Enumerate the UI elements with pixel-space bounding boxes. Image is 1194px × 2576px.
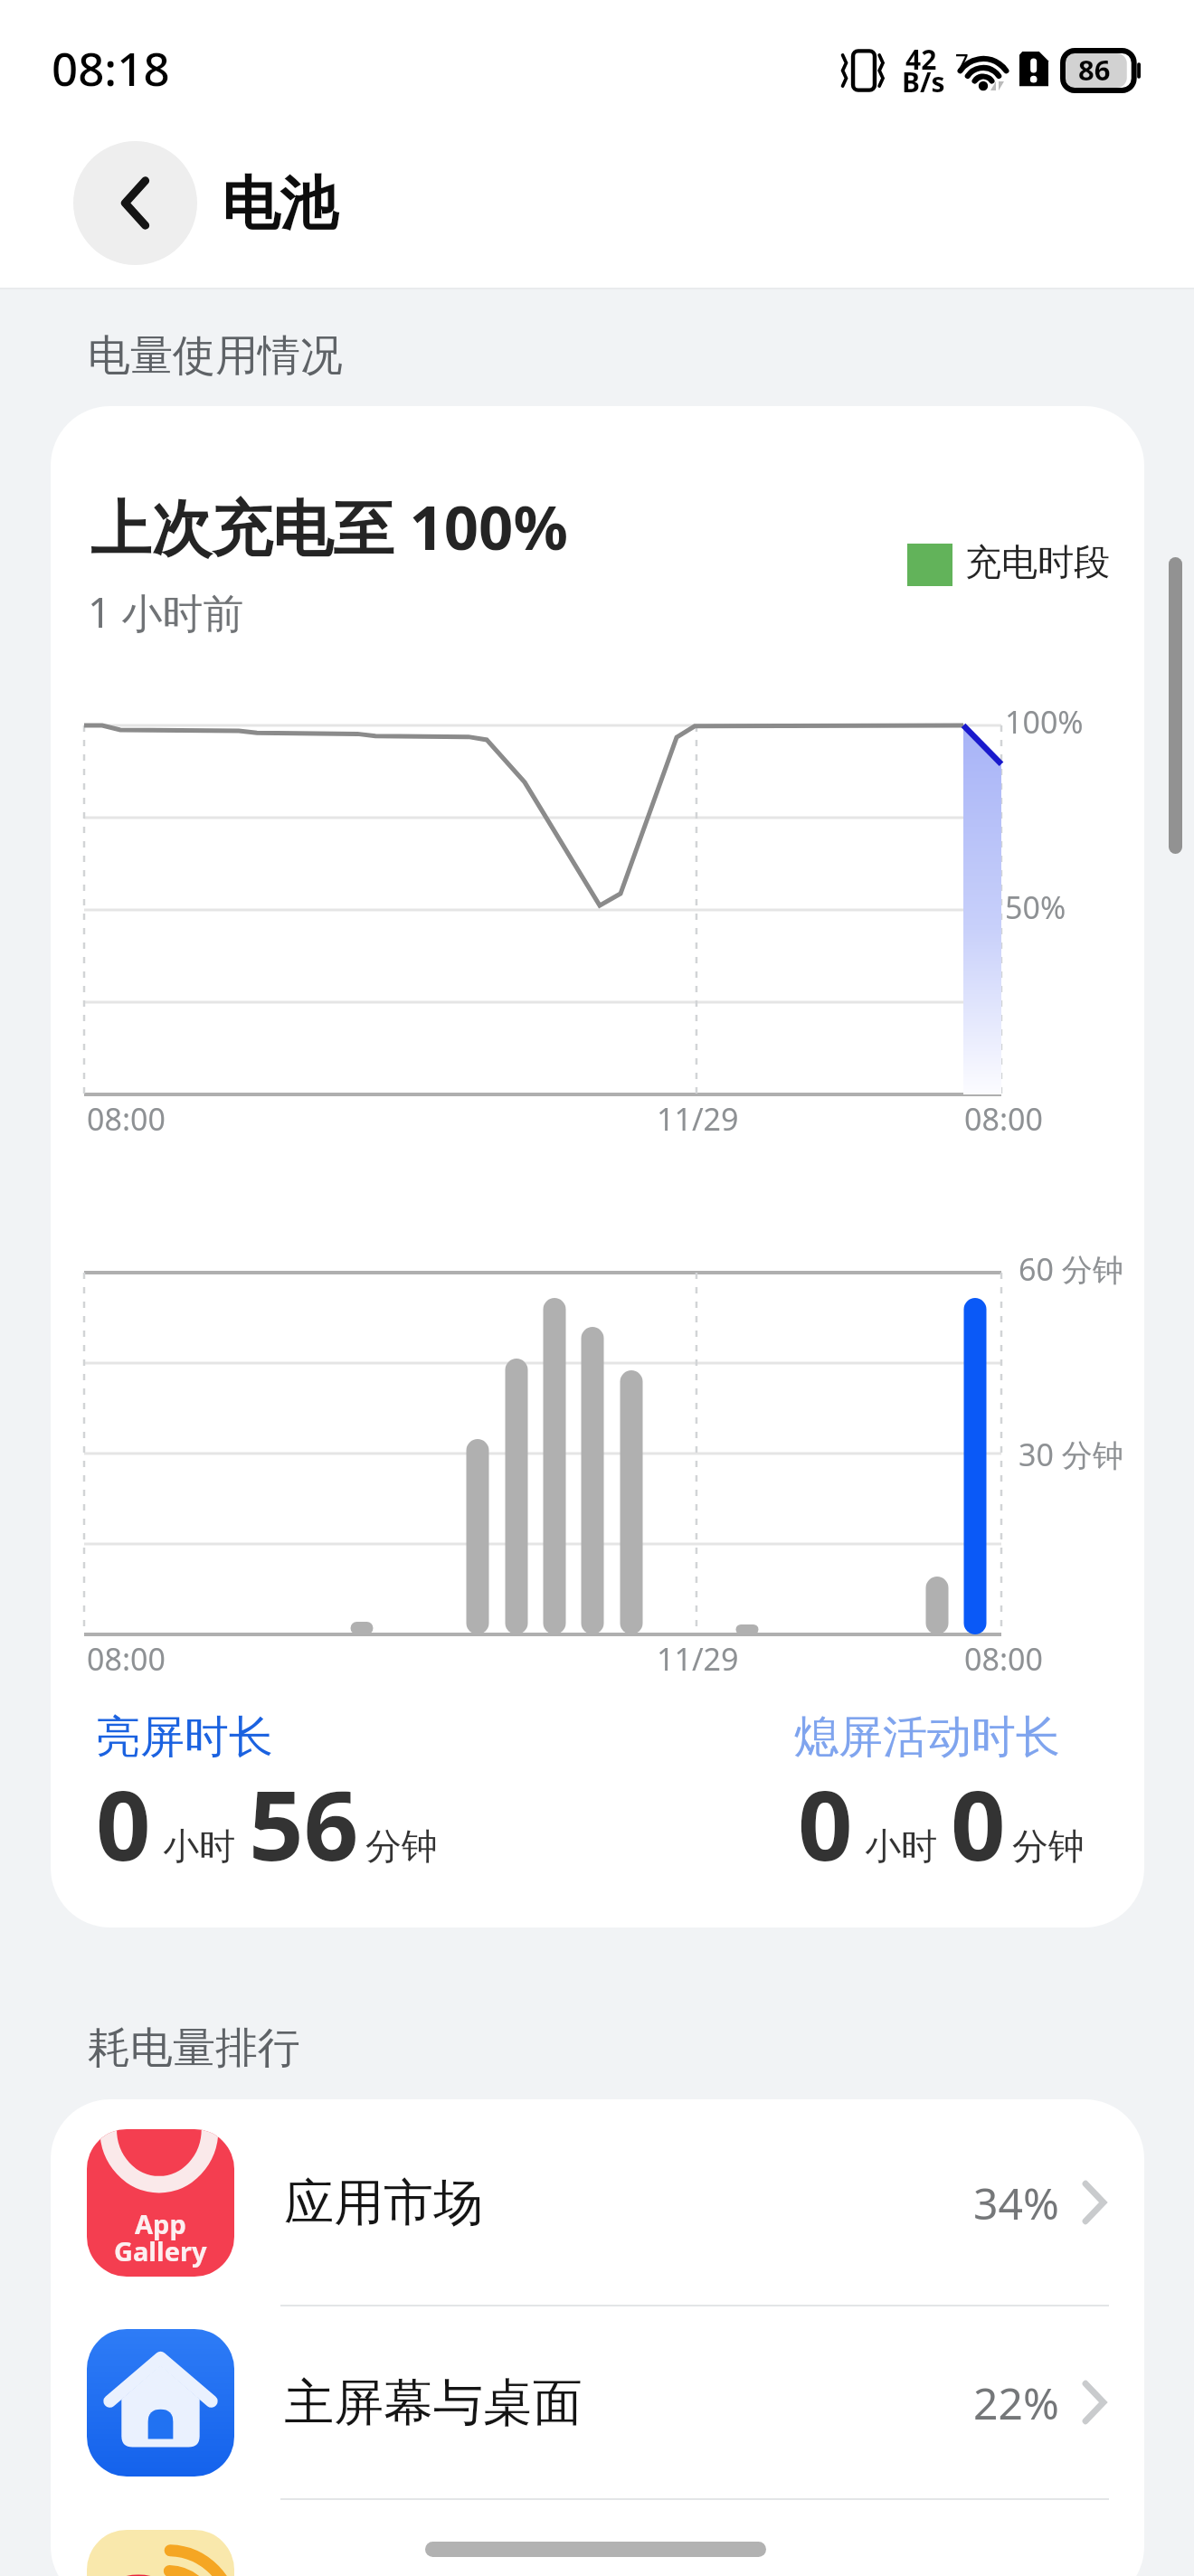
staticText: 分钟 [365,1823,438,1869]
staticText: 7 [955,45,969,77]
staticText: 应用市场 [284,2172,483,2234]
staticText: 11/29 [657,1098,739,1140]
staticText: 08:00 [964,1098,1043,1140]
staticText: 电池 [222,167,337,241]
staticText: Gallery [114,2233,207,2268]
button[interactable]: Back [73,141,197,265]
staticText: 0 [96,1758,151,1889]
staticText: 电量使用情况 [88,329,343,383]
staticText: 08:00 [964,1638,1043,1680]
staticText: 60 分钟 [1019,1248,1123,1290]
staticText: 小时 [865,1823,937,1869]
staticText: 亮屏时长 [96,1709,273,1766]
staticText: 30 分钟 [1019,1434,1123,1475]
staticText: App [135,2206,186,2241]
staticText: 42 [905,41,937,78]
staticText: 08:00 [87,1098,166,1140]
staticText: 100% [1005,701,1084,743]
staticText: 86 [1078,51,1111,89]
staticText: 0 [951,1758,1006,1889]
staticText: 主屏幕与桌面 [284,2372,583,2434]
staticText: 上次充电至 100% [90,485,568,568]
staticText: 充电时段 [965,539,1110,584]
staticText: 小时 [163,1823,235,1869]
staticText: 56 [249,1758,359,1889]
staticText: 熄屏活动时长 [794,1709,1060,1766]
staticText: 08:18 [52,36,170,99]
staticText: 50% [1005,886,1066,928]
staticText: 1 小时前 [88,584,244,639]
button[interactable] [51,2499,1144,2576]
staticText: 11/29 [657,1638,739,1680]
staticText: 耗电量排行 [88,2022,300,2075]
staticText: B/s [902,63,945,100]
staticText: 22% [973,2373,1059,2432]
staticText: 08:00 [87,1638,166,1680]
button[interactable]: 主屏幕与桌面 [51,2306,1144,2499]
staticText: 0 [798,1758,853,1889]
button[interactable]: App [51,2099,1144,2306]
staticText: 分钟 [1012,1823,1085,1869]
staticText: 34% [973,2173,1059,2232]
